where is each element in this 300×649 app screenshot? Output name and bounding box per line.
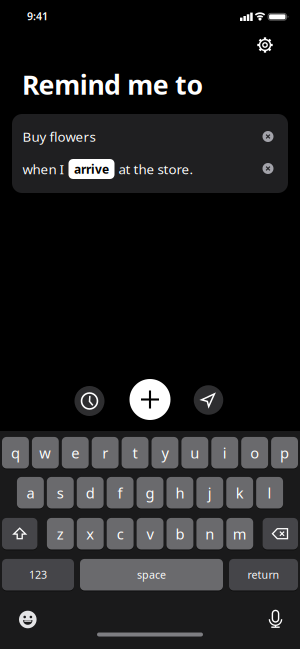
staticText: h [175,483,184,502]
button[interactable]: d [77,477,104,508]
staticText: arrive [74,161,109,177]
staticText: m [233,524,247,543]
button[interactable] [262,163,273,174]
staticText: 123 [29,568,47,582]
staticText: g [145,483,154,502]
staticText: Buy flowers [22,128,95,145]
staticText: f [118,483,123,502]
button[interactable]: l [256,477,283,508]
staticText: p [280,443,289,462]
button[interactable]: b [166,518,193,549]
button[interactable]: h [166,477,193,508]
staticText: space [137,568,166,582]
staticText: q [11,443,20,462]
button[interactable]: j [196,477,223,508]
button[interactable]: s [47,477,74,508]
button[interactable]: q [2,437,29,468]
button[interactable] [74,386,104,416]
button[interactable]: y [151,437,178,468]
staticText: d [86,483,95,502]
button[interactable] [262,131,273,142]
button[interactable]: g [137,477,163,508]
button[interactable]: 123 [2,559,74,590]
button[interactable]: return [229,559,298,590]
staticText: z [57,524,64,543]
staticText: i [223,443,227,462]
staticText: when I [22,160,64,178]
staticText: at the store. [118,160,193,178]
staticText: e [71,443,79,462]
staticText: return [247,568,279,582]
staticText: b [175,524,184,543]
button[interactable]: m [226,518,253,549]
button[interactable]: a [17,477,44,508]
button[interactable] [194,385,223,415]
button[interactable]: f [107,477,133,508]
staticText: x [86,524,94,543]
button[interactable]: w [32,437,59,468]
staticText: v [147,524,154,543]
button[interactable] [263,518,298,549]
staticText: 9:41 [27,9,48,23]
button[interactable] [129,379,170,420]
button[interactable]: n [196,518,223,549]
staticText: y [161,443,168,462]
staticText: a [26,483,34,502]
button[interactable]: x [77,518,104,549]
button[interactable]: o [241,437,268,468]
staticText: t [133,443,138,462]
staticText: s [57,483,64,502]
button[interactable]: i [211,437,238,468]
staticText: o [250,443,259,462]
staticText: r [102,443,108,462]
button[interactable] [2,518,37,549]
button[interactable]: t [122,437,148,468]
button[interactable]: e [62,437,89,468]
button[interactable] [266,609,284,629]
button[interactable] [19,611,37,628]
button[interactable]: r [92,437,119,468]
button[interactable]: v [137,518,163,549]
staticText: l [268,483,272,502]
button[interactable]: c [107,518,134,549]
button[interactable] [253,33,277,57]
staticText: k [236,483,244,502]
staticText: Remind me to [22,67,204,102]
staticText: w [39,443,51,462]
button[interactable]: z [47,518,74,549]
staticText: j [208,483,212,502]
staticText: u [190,443,199,462]
button[interactable]: k [226,477,253,508]
staticText: c [117,524,124,543]
staticText: n [205,524,214,543]
button[interactable]: space [80,559,223,590]
button[interactable]: u [181,437,208,468]
button[interactable]: p [271,437,298,468]
